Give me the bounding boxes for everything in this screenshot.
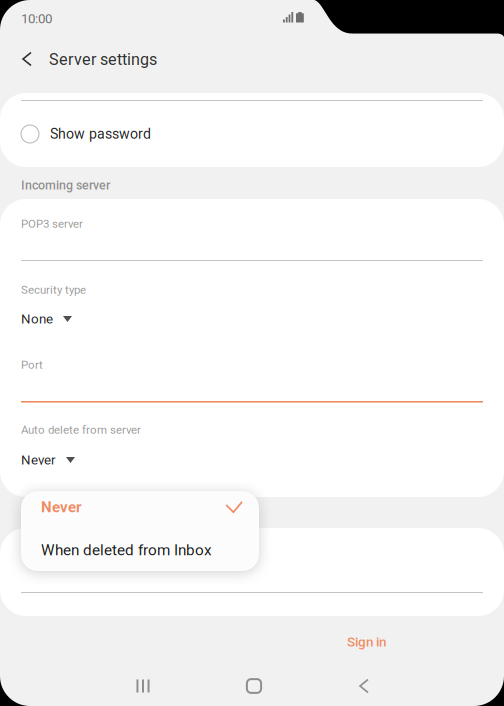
button[interactable]: When deleted from Inbox bbox=[21, 530, 259, 570]
staticText: Show password bbox=[50, 126, 151, 142]
staticText: Never bbox=[41, 498, 82, 516]
button[interactable]: Never bbox=[21, 450, 85, 470]
button[interactable]: Show password bbox=[0, 110, 504, 158]
button[interactable]: Back bbox=[324, 666, 404, 706]
staticText: 10:00 bbox=[21, 11, 52, 27]
button[interactable]: Home bbox=[214, 666, 294, 706]
staticText: Auto delete from server bbox=[21, 423, 141, 436]
staticText: None bbox=[21, 311, 53, 327]
staticText: Never bbox=[21, 452, 56, 468]
staticText: Port bbox=[21, 358, 43, 371]
staticText: Server settings bbox=[49, 50, 157, 69]
staticText: POP3 server bbox=[21, 217, 83, 230]
button[interactable]: Recents bbox=[103, 666, 183, 706]
staticText: Security type bbox=[21, 283, 86, 296]
staticText: Incoming server bbox=[21, 178, 110, 192]
staticText: When deleted from Inbox bbox=[41, 541, 212, 559]
button[interactable]: None bbox=[21, 309, 82, 329]
button[interactable]: Never bbox=[21, 487, 259, 527]
button[interactable]: Sign in bbox=[331, 625, 402, 659]
button[interactable]: Back bbox=[13, 42, 41, 76]
staticText: Sign in bbox=[347, 634, 386, 650]
